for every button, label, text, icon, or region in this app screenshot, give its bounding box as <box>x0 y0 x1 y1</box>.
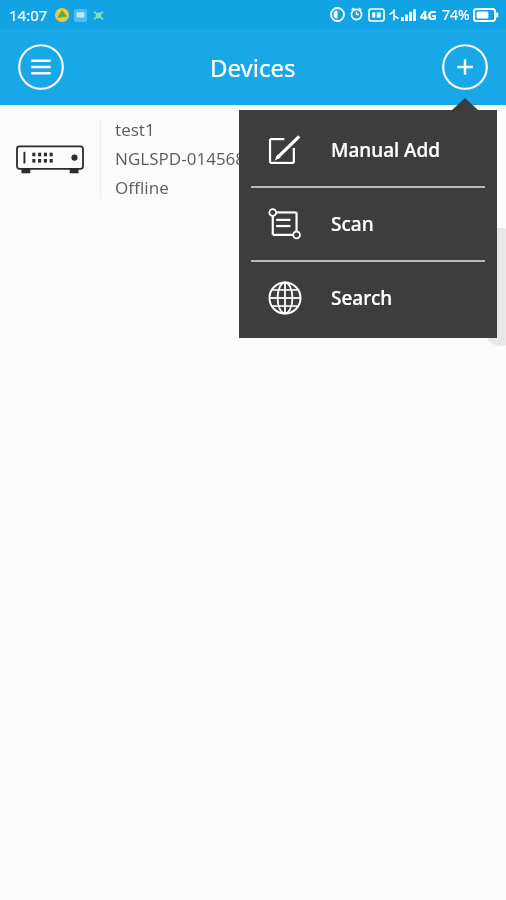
button[interactable]: Menu <box>16 42 66 92</box>
button[interactable]: Scan <box>239 188 497 260</box>
staticText: Offline <box>115 176 169 199</box>
staticText: 14:07 <box>9 5 48 25</box>
button[interactable]: Search <box>239 262 497 334</box>
staticText: Scan <box>331 211 374 237</box>
staticText: NGLSPD-014568-EXWFY <box>115 147 305 170</box>
staticText: Manual Add <box>331 137 441 163</box>
staticText: Devices <box>210 51 296 84</box>
staticText: test1 <box>115 118 155 141</box>
button[interactable]: Add device <box>440 42 490 92</box>
button[interactable]: Manual Add <box>239 114 497 186</box>
staticText: 74% <box>442 5 470 24</box>
staticText: Search <box>331 285 393 311</box>
button[interactable]: test1 <box>0 105 506 212</box>
staticText: 4G <box>420 6 437 24</box>
